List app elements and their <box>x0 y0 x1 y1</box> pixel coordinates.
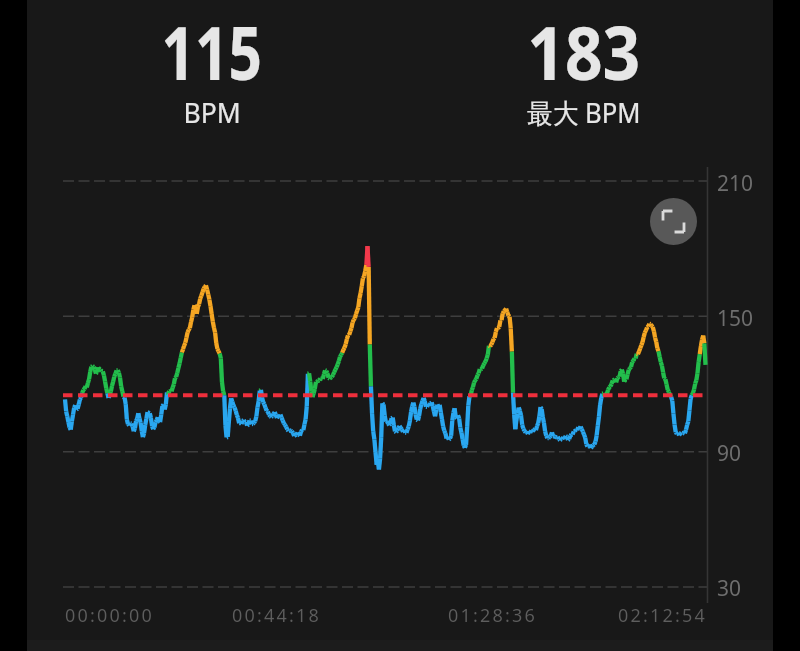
staticText: 00:44:18 <box>232 603 322 628</box>
staticText: 30 <box>717 574 742 603</box>
button[interactable]: Expand chart <box>650 198 697 245</box>
staticText: 115 <box>162 2 262 101</box>
staticText: 02:12:54 <box>618 603 708 628</box>
staticText: 210 <box>717 169 754 198</box>
staticText: BPM <box>184 94 241 131</box>
staticText: 150 <box>717 304 754 333</box>
staticText: 最大 BPM <box>527 94 641 131</box>
staticText: 90 <box>717 439 742 468</box>
staticText: 01:28:36 <box>448 603 538 628</box>
staticText: 183 <box>527 2 641 101</box>
staticText: 00:00:00 <box>65 603 155 628</box>
